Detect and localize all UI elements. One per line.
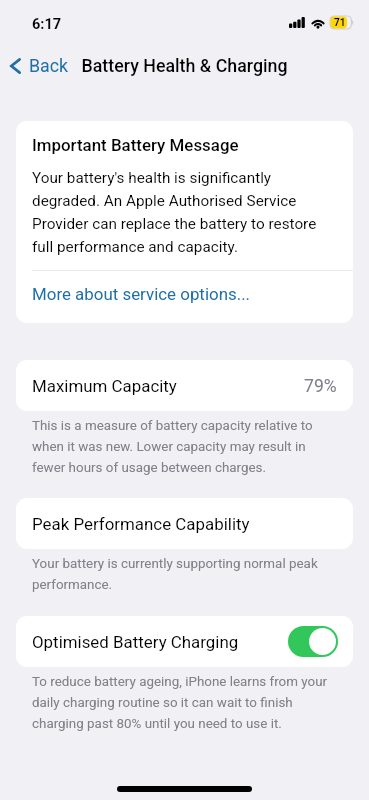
staticText: To reduce battery ageing, iPhone learns … — [32, 670, 337, 733]
staticText: Battery Health & Charging — [81, 55, 288, 76]
staticText: Your battery is currently supporting nor… — [32, 552, 337, 594]
staticText: 6:17 — [32, 16, 62, 33]
staticText: More about service options... — [32, 284, 251, 304]
button[interactable]: More about service options... — [16, 271, 353, 323]
button[interactable]: Back — [0, 53, 79, 81]
button[interactable]: Maximum Capacity — [16, 360, 353, 411]
button[interactable]: Optimised Battery Charging toggle, on — [288, 626, 338, 657]
staticText: Maximum Capacity — [32, 376, 177, 396]
staticText: Peak Performance Capability — [32, 514, 250, 534]
button[interactable]: Peak Performance Capability — [16, 498, 353, 549]
staticText: 79% — [304, 376, 337, 396]
staticText: Back — [29, 56, 69, 76]
staticText: 71 — [334, 17, 346, 28]
other: Battery 71 percent, low power mode — [330, 16, 353, 29]
staticText: This is a measure of battery capacity re… — [32, 414, 337, 477]
other: Wi-Fi — [310, 17, 326, 28]
staticText: Optimised Battery Charging — [32, 632, 239, 652]
other: Cellular signal — [289, 17, 306, 28]
staticText: Important Battery Message — [32, 135, 239, 155]
staticText: Your battery's health is significantly d… — [32, 164, 332, 256]
